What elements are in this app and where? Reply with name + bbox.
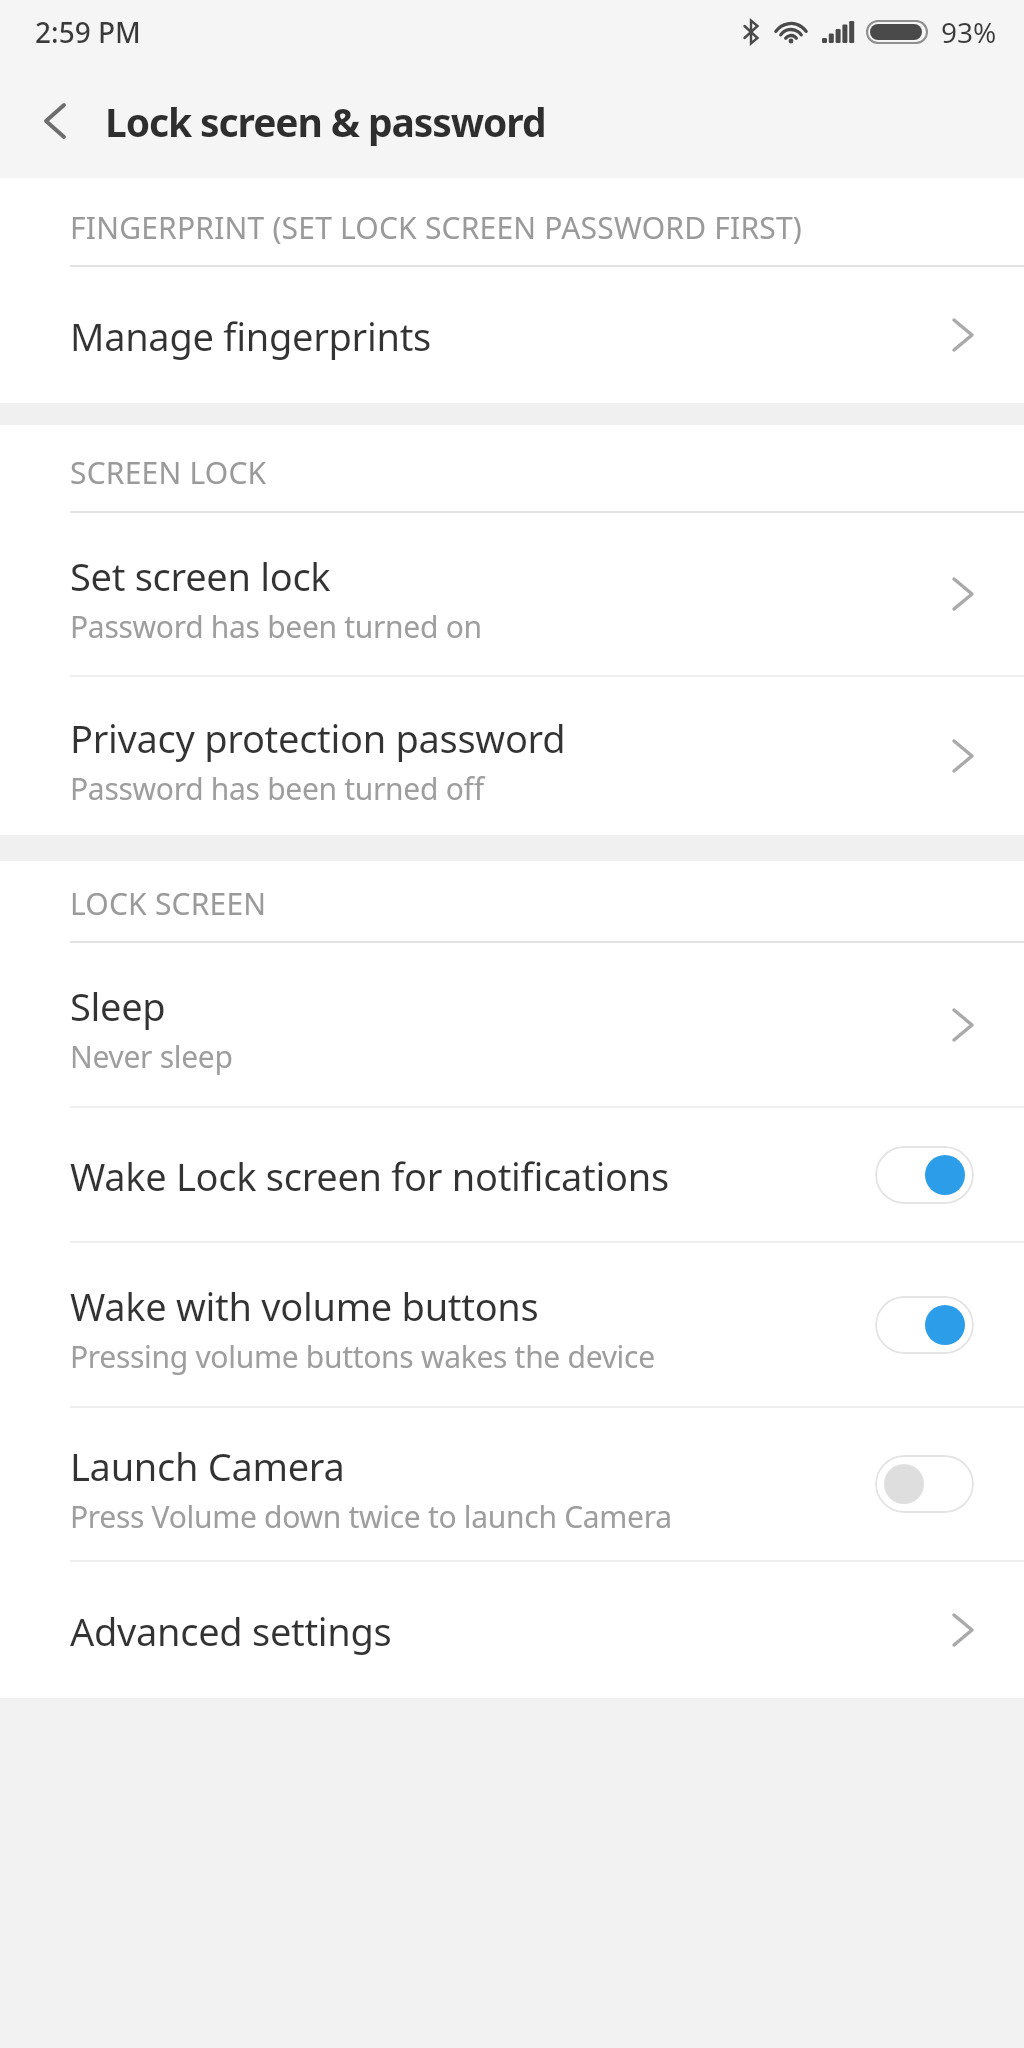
staticText: Password has been turned on <box>70 606 482 647</box>
staticText: LOCK SCREEN <box>70 883 267 924</box>
staticText: Manage fingerprints <box>70 310 431 362</box>
staticText: Pressing volume buttons wakes the device <box>70 1336 655 1377</box>
button[interactable] <box>875 1455 974 1513</box>
staticText: Wake Lock screen for notifications <box>70 1150 669 1202</box>
staticText: FINGERPRINT (SET LOCK SCREEN PASSWORD FI… <box>70 207 803 248</box>
staticText: Sleep <box>70 980 166 1032</box>
staticText: Advanced settings <box>70 1605 392 1657</box>
button[interactable]: Wake with volume buttons <box>0 1243 1024 1406</box>
staticText: Wake with volume buttons <box>70 1280 539 1332</box>
button[interactable] <box>875 1296 974 1354</box>
button[interactable]: Wake Lock screen for notifications <box>0 1108 1024 1241</box>
button[interactable]: Launch Camera <box>0 1408 1024 1560</box>
staticText: Launch Camera <box>70 1440 345 1492</box>
button[interactable]: Sleep <box>0 943 1024 1106</box>
staticText: Never sleep <box>70 1036 233 1077</box>
staticText: Lock screen & password <box>105 95 546 148</box>
staticText: SCREEN LOCK <box>70 452 267 493</box>
staticText: Set screen lock <box>70 550 331 602</box>
staticText: 93% <box>941 13 997 51</box>
button[interactable]: Manage fingerprints <box>0 267 1024 403</box>
button[interactable] <box>875 1146 974 1204</box>
button[interactable]: Set screen lock <box>0 513 1024 675</box>
staticText: 2:59 PM <box>35 13 141 51</box>
staticText: Password has been turned off <box>70 768 484 809</box>
staticText: Privacy protection password <box>70 712 566 764</box>
button[interactable] <box>0 64 105 178</box>
staticText: Press Volume down twice to launch Camera <box>70 1496 672 1537</box>
button[interactable]: Privacy protection password <box>0 677 1024 835</box>
button[interactable]: Advanced settings <box>0 1562 1024 1698</box>
